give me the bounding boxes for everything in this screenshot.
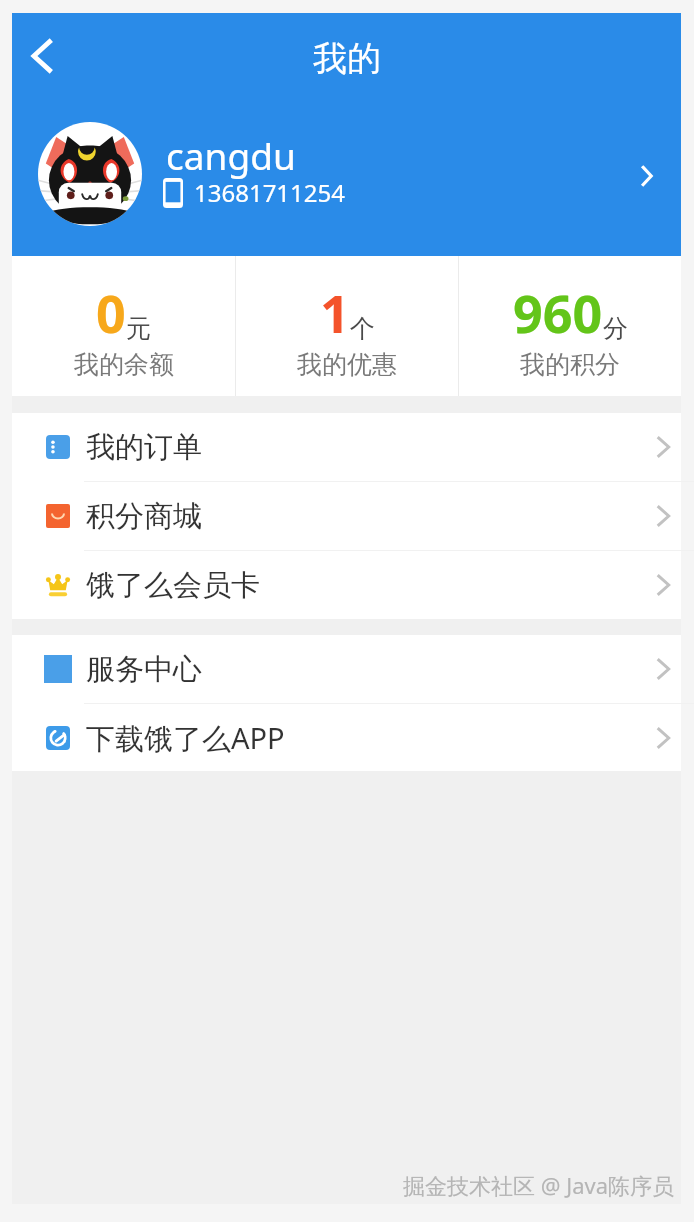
staticText: 我的优惠 — [297, 349, 397, 380]
button[interactable]: 下载饿了么APP — [12, 704, 681, 771]
button[interactable]: cangdu — [12, 112, 681, 236]
staticText: 饿了么会员卡 — [86, 567, 260, 604]
button[interactable]: Back — [14, 28, 70, 84]
button[interactable]: 饿了么会员卡 — [12, 551, 681, 619]
staticText: 我的积分 — [520, 349, 620, 380]
button[interactable]: 960 — [459, 256, 681, 396]
button[interactable]: 积分商城 — [12, 482, 681, 550]
staticText: 元 — [126, 313, 151, 344]
staticText: 我的 — [313, 37, 381, 80]
staticText: 我的余额 — [74, 349, 174, 380]
staticText: cangdu — [166, 130, 296, 180]
staticText: 1 — [320, 277, 350, 348]
staticText: 0 — [96, 277, 126, 348]
staticText: 分 — [603, 313, 628, 344]
staticText: 我的订单 — [86, 429, 202, 466]
staticText: 13681711254 — [194, 176, 346, 209]
button[interactable]: 我的订单 — [12, 413, 681, 481]
staticText: 下载饿了么APP — [86, 718, 285, 758]
button[interactable]: 0 — [12, 256, 235, 396]
button[interactable]: 1 — [236, 256, 458, 396]
staticText: 960 — [513, 277, 603, 348]
button[interactable]: 服务中心 — [12, 635, 681, 703]
staticText: 服务中心 — [86, 651, 202, 688]
staticText: 个 — [350, 313, 375, 344]
button[interactable]: Profile details — [629, 156, 669, 196]
staticText: 掘金技术社区 @ Java陈序员 — [403, 1170, 675, 1200]
staticText: 积分商城 — [86, 498, 202, 535]
